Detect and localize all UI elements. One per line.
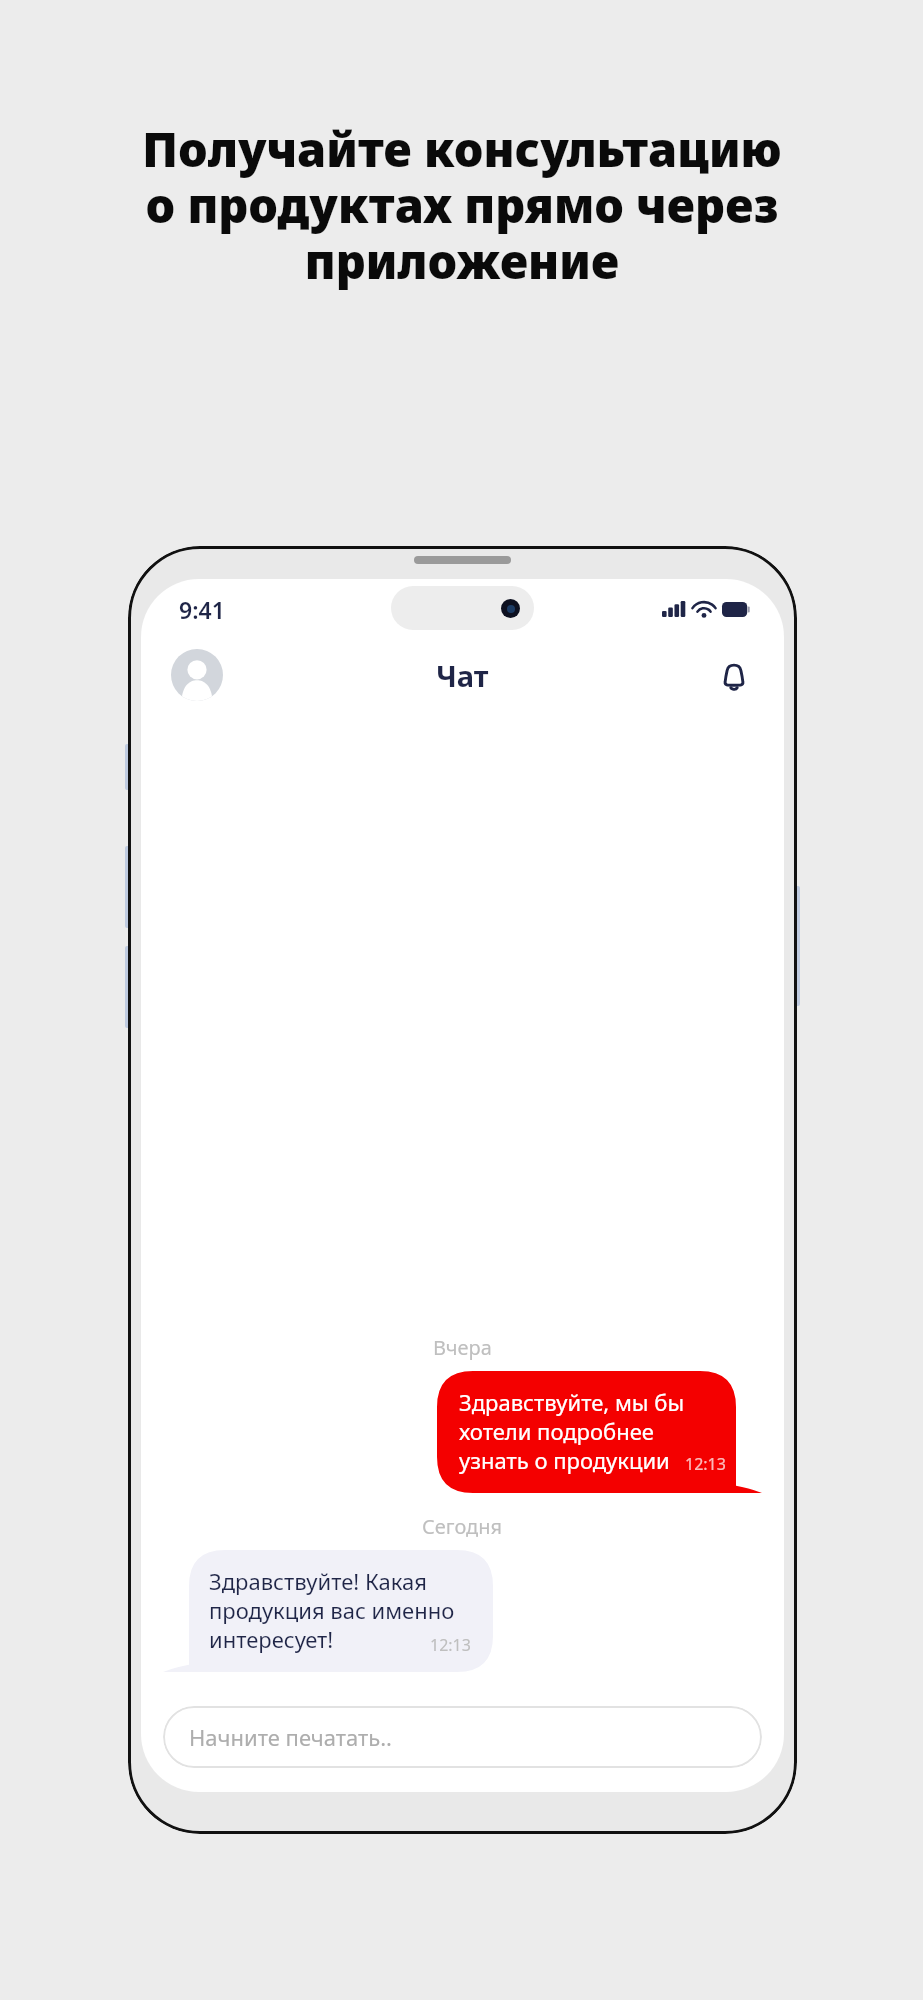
staticText: Здравствуйте, мы бы хотели подробнее узн…	[459, 1387, 714, 1475]
staticText: 9:41	[179, 594, 225, 625]
button[interactable]: Уведомления	[710, 651, 758, 699]
button[interactable]: Профиль	[171, 649, 223, 701]
staticText: Чат	[436, 656, 489, 695]
staticText: 12:13	[430, 1634, 471, 1656]
staticText: Вчера	[433, 1334, 492, 1361]
staticText: Начните печатать..	[189, 1722, 393, 1752]
staticText: Здравствуйте! Какая продукция вас именно…	[209, 1566, 471, 1654]
staticText: Сегодня	[422, 1513, 503, 1540]
staticText: 12:13	[685, 1453, 726, 1475]
button[interactable]: Начните печатать..	[163, 1706, 762, 1768]
button[interactable]: Здравствуйте! Какая продукция вас именно…	[163, 1550, 493, 1672]
staticText: Получайте консультацию о продуктах прямо…	[142, 117, 782, 293]
button[interactable]: Здравствуйте, мы бы хотели подробнее узн…	[437, 1371, 762, 1493]
